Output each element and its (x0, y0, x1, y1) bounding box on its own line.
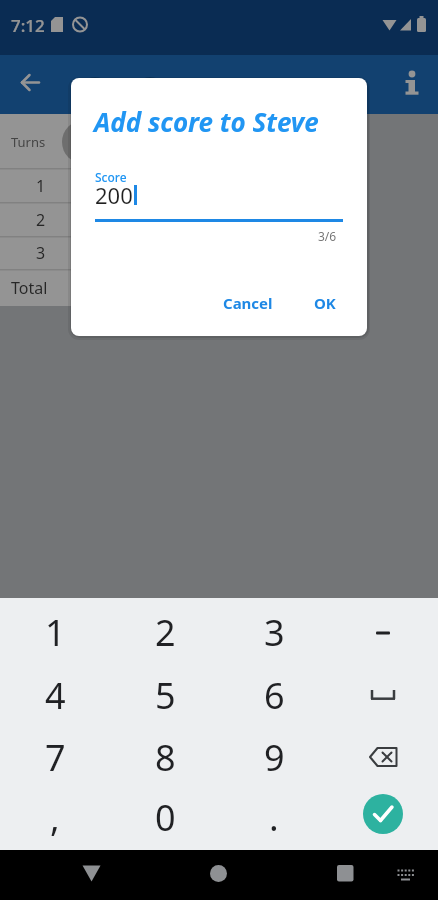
staticText: 5 (155, 671, 176, 720)
button[interactable] (198, 853, 240, 895)
staticText: 2 (36, 209, 46, 229)
button[interactable]: 2 (110, 601, 220, 664)
button[interactable] (0, 55, 438, 114)
button[interactable]: . (219, 786, 329, 849)
button[interactable] (71, 853, 113, 895)
button[interactable]: 5 (110, 664, 220, 727)
button[interactable]: , (0, 786, 110, 849)
button[interactable] (329, 601, 438, 664)
staticText: 4 (45, 671, 66, 720)
button[interactable]: 9 (219, 726, 329, 789)
staticText: 1 (36, 175, 46, 195)
staticText: 9 (264, 733, 285, 782)
staticText: Cancel (223, 293, 273, 313)
staticText: Turns (11, 133, 46, 151)
button[interactable]: 6 (219, 664, 329, 727)
button[interactable] (329, 664, 438, 727)
staticText: Add score to Steve (94, 104, 319, 139)
staticText: OK (314, 293, 336, 313)
staticText: Score (95, 169, 127, 183)
staticText: 6 (264, 671, 285, 720)
button[interactable] (329, 726, 438, 789)
button[interactable] (329, 786, 438, 849)
staticText: 7 (45, 733, 66, 782)
button[interactable]: 0 (110, 786, 220, 849)
button[interactable] (324, 853, 366, 895)
staticText: , (50, 793, 60, 842)
button[interactable] (390, 853, 426, 895)
button[interactable]: 4 (0, 664, 110, 727)
button[interactable] (12, 64, 50, 102)
staticText: 1 (45, 608, 66, 657)
staticText: 3 (264, 608, 285, 657)
staticText: 8 (155, 733, 176, 782)
staticText: 3 (36, 242, 46, 263)
button[interactable]: 3 (219, 601, 329, 664)
staticText: Total (11, 277, 48, 298)
button[interactable]: 8 (110, 726, 220, 789)
button[interactable]: 7 (0, 726, 110, 789)
button[interactable] (396, 66, 428, 100)
button[interactable]: OK (303, 288, 347, 318)
staticText: 3/6 (318, 228, 337, 243)
staticText: . (269, 793, 279, 842)
staticText: 2 (155, 608, 176, 657)
staticText: 0 (155, 793, 176, 842)
staticText: 7:12 (11, 14, 45, 35)
button[interactable]: Cancel (215, 288, 281, 318)
staticText: 200 (95, 180, 133, 206)
button[interactable] (363, 794, 403, 834)
button[interactable]: 1 (0, 601, 110, 664)
